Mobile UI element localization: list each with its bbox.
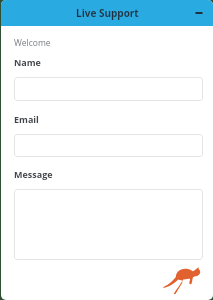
staticText: Email [14, 113, 39, 125]
staticText: Message [14, 168, 53, 180]
button[interactable]: Name input [14, 77, 203, 101]
button[interactable]: Live Support [1, 0, 213, 26]
button[interactable]: Minimize [191, 5, 207, 21]
staticText: Welcome [14, 37, 51, 49]
staticText: Name [14, 56, 41, 68]
button[interactable]: Message input [14, 189, 203, 260]
button[interactable]: Email input [14, 134, 203, 157]
button[interactable]: Kangaroo logo [159, 262, 203, 296]
staticText: Live Support [76, 6, 139, 20]
